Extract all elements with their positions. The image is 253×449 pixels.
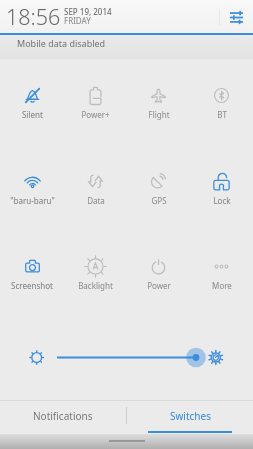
staticText: BT	[217, 109, 227, 120]
button[interactable]: Power+	[64, 87, 127, 121]
staticText: Data	[87, 195, 105, 206]
staticText: 18:56	[6, 2, 61, 31]
button[interactable]: BT	[190, 87, 253, 121]
button[interactable]: Data	[64, 173, 127, 207]
button[interactable]: Lock	[190, 173, 253, 207]
button[interactable]: Silent	[0, 87, 64, 121]
button[interactable]: Quick settings	[220, 0, 253, 35]
staticText: Backlight	[78, 280, 113, 291]
staticText: Flight	[148, 109, 170, 120]
button[interactable]: Screenshot	[0, 258, 64, 292]
staticText: Notifications	[33, 409, 93, 423]
staticText: More	[212, 280, 232, 291]
staticText: Screenshot	[11, 280, 53, 291]
staticText: "baru-baru"	[10, 195, 55, 206]
button[interactable]: Backlight	[64, 258, 127, 292]
button[interactable]: "baru-baru"	[0, 173, 64, 207]
staticText: Power+	[81, 109, 110, 120]
staticText: Silent	[22, 109, 43, 120]
button[interactable]: Power	[127, 258, 190, 292]
button[interactable]: Flight	[127, 87, 190, 121]
staticText: FRIDAY	[64, 15, 91, 26]
button[interactable]: More	[190, 258, 253, 292]
button[interactable]: Notifications	[0, 401, 126, 434]
staticText: Lock	[213, 195, 231, 206]
button[interactable]: Switches	[127, 401, 253, 434]
staticText: Power	[147, 280, 171, 291]
staticText: GPS	[151, 195, 167, 206]
staticText: Switches	[170, 409, 211, 423]
staticText: Mobile data disabled	[17, 37, 106, 49]
button[interactable]: GPS	[127, 173, 190, 207]
staticText: SEP 19, 2014	[64, 6, 112, 17]
